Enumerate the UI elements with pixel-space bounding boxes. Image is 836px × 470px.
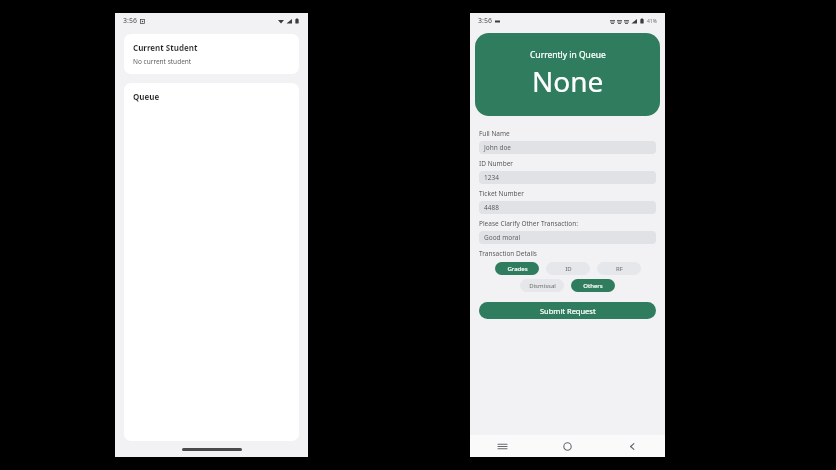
staticText: 1234 [484, 173, 499, 182]
staticText: Currently in Queue [530, 49, 606, 61]
staticText: Submit Request [540, 306, 596, 316]
button[interactable]: Queue [124, 83, 299, 441]
staticText: None [532, 62, 604, 100]
staticText: ID Number [479, 159, 514, 168]
staticText: 3:56 [123, 16, 137, 26]
button[interactable]: Back [600, 435, 665, 457]
button[interactable]: Others [571, 279, 615, 292]
button[interactable]: Submit Request [479, 302, 656, 319]
button[interactable]: Home [535, 435, 600, 457]
button[interactable]: Currently in Queue [475, 33, 660, 116]
staticText: Current Student [133, 42, 198, 53]
staticText: No current student [133, 57, 192, 66]
staticText: Full Name [479, 129, 510, 138]
button[interactable]: Dismissal [520, 279, 564, 292]
button[interactable]: RF [597, 262, 641, 275]
button[interactable]: ID [546, 262, 590, 275]
button[interactable]: 1234 [479, 171, 656, 184]
staticText: 4488 [484, 203, 499, 212]
button[interactable]: Current Student [124, 34, 299, 74]
button[interactable]: John doe [479, 141, 656, 154]
staticText: Grades [507, 265, 528, 273]
staticText: Please Clarify Other Transaction: [479, 219, 579, 228]
button[interactable]: 4488 [479, 201, 656, 214]
staticText: Transaction Details [479, 249, 537, 258]
staticText: Ticket Number [479, 189, 524, 198]
staticText: 3:56 [478, 16, 492, 26]
staticText: Dismissal [529, 282, 556, 290]
staticText: ID [565, 265, 572, 273]
button[interactable]: Recent apps [470, 435, 535, 457]
staticText: Others [583, 282, 603, 290]
staticText: John doe [484, 143, 512, 152]
button[interactable]: Grades [495, 262, 539, 275]
button[interactable]: Good moral [479, 231, 656, 244]
staticText: RF [616, 265, 623, 273]
staticText: Good moral [484, 233, 521, 242]
staticText: Queue [133, 91, 160, 102]
staticText: 41% [647, 18, 657, 25]
